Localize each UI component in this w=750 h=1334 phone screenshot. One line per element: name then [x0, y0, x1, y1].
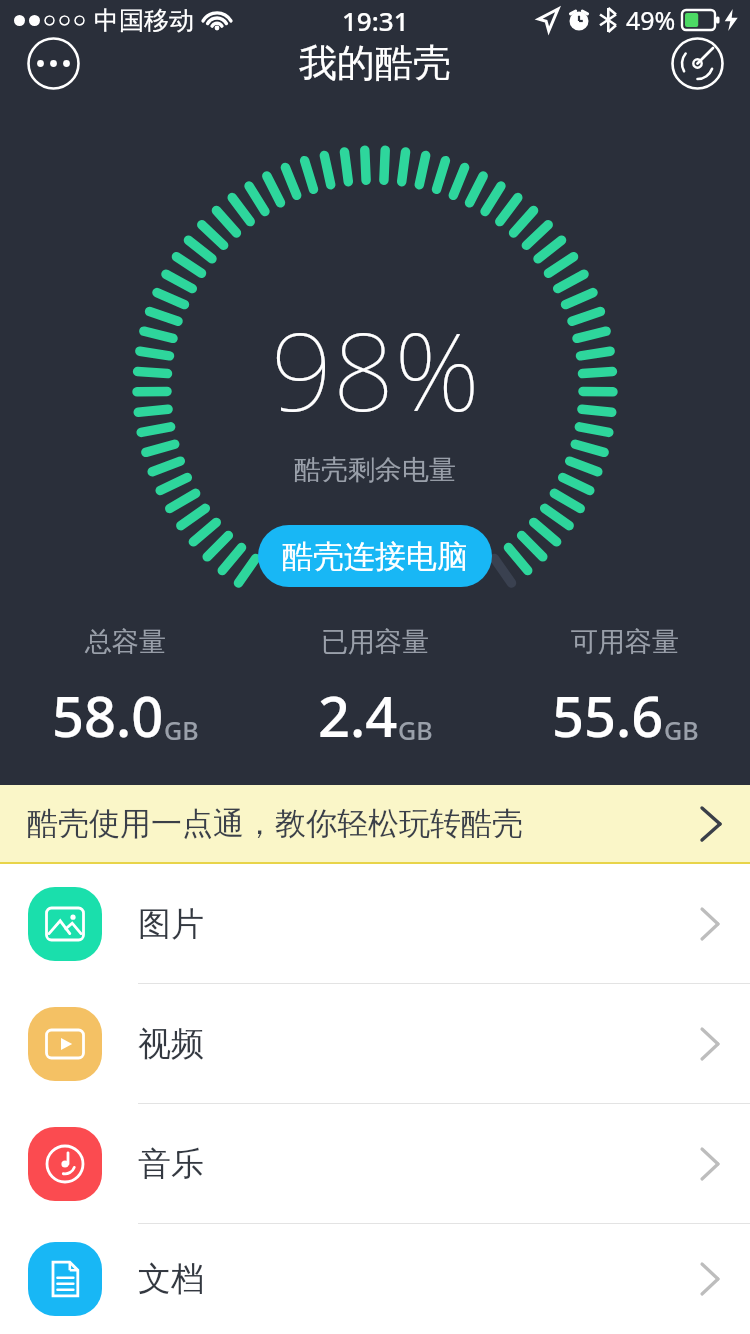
button[interactable]: 音乐 — [0, 1104, 750, 1224]
staticText: 中国移动 — [94, 5, 194, 36]
staticText: 总容量 — [85, 625, 166, 659]
staticText: GB — [398, 713, 433, 747]
staticText: GB — [664, 713, 699, 747]
staticText: 我的酷壳 — [299, 39, 451, 87]
staticText: 酷壳连接电脑 — [282, 537, 468, 576]
staticText: 55.6 — [552, 677, 664, 753]
staticText: 98% — [271, 296, 480, 443]
staticText: 音乐 — [138, 1143, 204, 1185]
button[interactable]: 视频 — [0, 984, 750, 1104]
staticText: 2.4 — [318, 677, 398, 753]
button[interactable]: 文档 — [0, 1224, 750, 1334]
staticText: 可用容量 — [571, 625, 679, 659]
staticText: 已用容量 — [321, 625, 429, 659]
staticText: 58.0 — [52, 677, 164, 753]
staticText: 视频 — [138, 1023, 204, 1065]
button[interactable]: 图片 — [0, 864, 750, 984]
staticText: 酷壳使用一点通，教你轻松玩转酷壳 — [27, 804, 523, 843]
staticText: 19:31 — [342, 3, 409, 38]
staticText: 酷壳剩余电量 — [294, 453, 456, 487]
button[interactable]: Speed test — [669, 35, 725, 91]
button[interactable]: 酷壳连接电脑 — [258, 525, 492, 587]
button[interactable]: 酷壳使用一点通，教你轻松玩转酷壳 — [0, 785, 750, 862]
button[interactable]: More options — [25, 35, 81, 91]
staticText: GB — [164, 713, 199, 747]
staticText: 图片 — [138, 903, 204, 945]
staticText: 49% — [626, 3, 676, 37]
staticText: 文档 — [138, 1258, 204, 1300]
